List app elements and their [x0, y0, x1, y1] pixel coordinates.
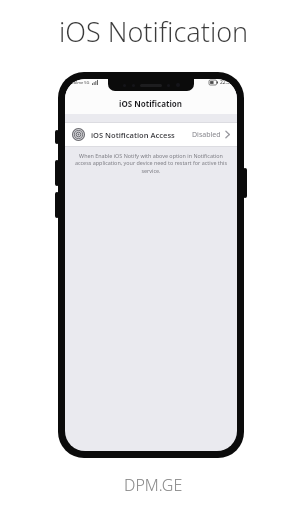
button[interactable]: iOS Notification Access icon [65, 123, 237, 146]
staticText: iOS Notification [119, 98, 183, 109]
staticText: When Enable iOS Notify with above option… [73, 152, 229, 175]
staticText: Realme 5G [69, 80, 90, 85]
staticText: iOS Notification Access [91, 130, 175, 140]
staticText: Disabled [192, 130, 221, 140]
other: Open [225, 130, 230, 139]
staticText: DPM.GE [124, 474, 183, 496]
staticText: iOS Notification [59, 13, 249, 50]
staticText: 22:38 [220, 79, 233, 86]
other: iOS Notification Access icon [72, 128, 85, 141]
